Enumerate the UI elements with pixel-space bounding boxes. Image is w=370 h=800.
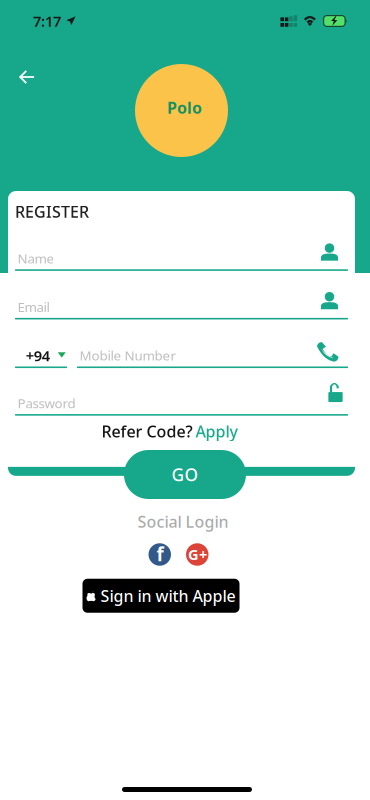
button[interactable]: Back	[8, 58, 46, 96]
staticText: G+	[188, 544, 207, 564]
staticText: Social Login	[137, 511, 228, 532]
staticText: Polo	[167, 97, 202, 118]
staticText: Email	[17, 298, 49, 316]
staticText: f	[157, 542, 164, 566]
staticText: REGISTER	[15, 201, 89, 222]
button[interactable]: GO	[124, 450, 246, 499]
staticText: Mobile Number	[79, 347, 176, 364]
button[interactable]: Refer Code?	[101, 421, 237, 442]
button[interactable]: Sign in with Facebook	[148, 543, 171, 566]
staticText: 7:17	[33, 11, 61, 31]
button[interactable]: Sign in with Google	[186, 543, 208, 566]
staticText: GO	[171, 463, 198, 486]
staticText: Name	[17, 249, 54, 267]
staticText: Apply	[195, 421, 237, 442]
staticText: Sign in with Apple	[100, 585, 235, 606]
staticText: Refer Code?	[101, 421, 195, 442]
button[interactable]: Sign in with Apple	[82, 579, 239, 613]
staticText: +94	[26, 346, 50, 365]
staticText: Password	[17, 394, 75, 412]
